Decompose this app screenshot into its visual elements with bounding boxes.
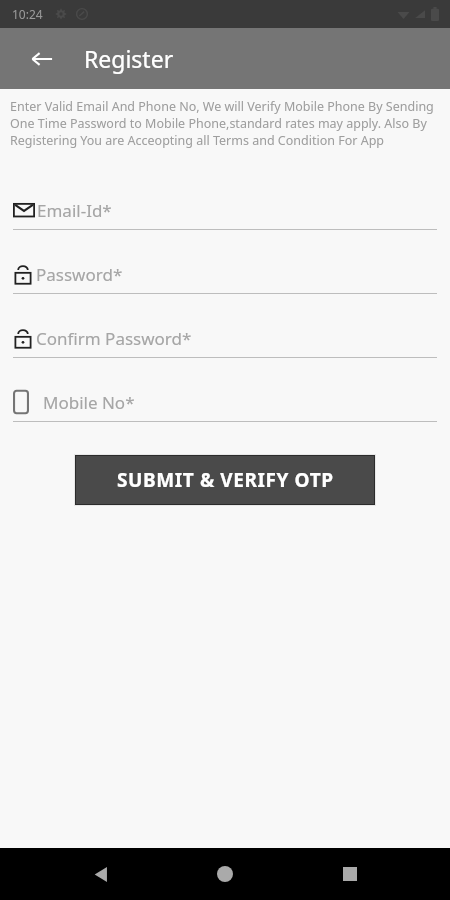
staticText: Register [84, 43, 174, 74]
button[interactable]: Email-Id* [13, 191, 437, 230]
button[interactable]: Confirm Password* [13, 319, 437, 358]
staticText: Enter Valid Email And Phone No, We will … [10, 98, 442, 149]
staticText: Mobile No* [43, 391, 135, 414]
button[interactable]: Back [77, 850, 125, 898]
staticText: Email-Id* [37, 199, 112, 222]
button[interactable]: Recent apps [326, 850, 374, 898]
staticText: SUBMIT & VERIFY OTP [117, 467, 334, 493]
staticText: Password* [36, 263, 123, 286]
button[interactable]: Home [201, 850, 249, 898]
staticText: 10:24 [12, 6, 43, 22]
button[interactable]: SUBMIT & VERIFY OTP [75, 455, 375, 505]
button[interactable]: Mobile No* [13, 383, 437, 422]
button[interactable]: Back [22, 39, 62, 79]
staticText: Confirm Password* [36, 327, 192, 350]
button[interactable]: Password* [13, 255, 437, 294]
